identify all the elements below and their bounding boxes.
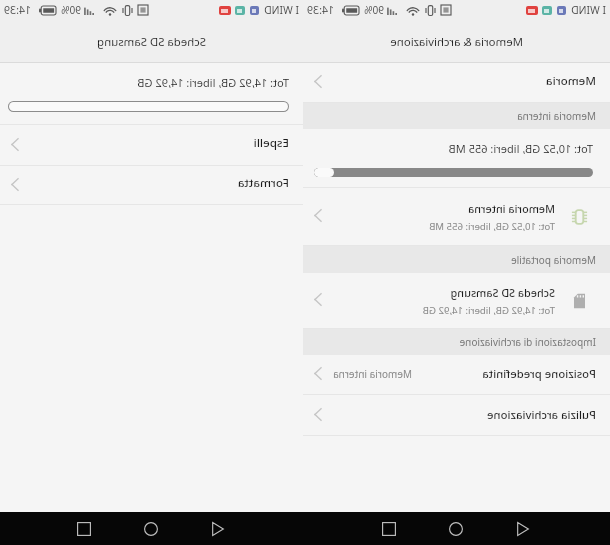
staticText: Memoria interna [468, 201, 555, 216]
staticText: Memoria & archiviazione [390, 34, 523, 50]
button[interactable]: Formatta [0, 166, 303, 204]
staticText: Tot: 10,52 GB, liberi: 655 MB [429, 220, 555, 233]
staticText: Espelli [253, 135, 289, 151]
staticText: Scheda SD Samsung [97, 34, 206, 50]
staticText: Formatta [237, 175, 289, 191]
staticText: Tot: 14,92 GB, liberi: 14,92 GB [422, 304, 555, 317]
staticText: Posizione predefinita [482, 366, 596, 381]
staticText: Memoria interna [333, 367, 412, 381]
button[interactable]: Recents [374, 514, 404, 544]
button[interactable]: Back [203, 514, 233, 544]
button[interactable]: Memoria interna [303, 188, 610, 245]
staticText: Scheda SD Samsung [450, 285, 555, 300]
staticText: Pulizia archiviazione [487, 407, 596, 422]
button[interactable]: Memoria [303, 63, 610, 102]
staticText: 14:39 [3, 3, 31, 17]
button[interactable]: Scheda SD Samsung [303, 273, 610, 328]
button[interactable]: Recents [69, 514, 99, 544]
button[interactable]: Posizione predefinita [303, 355, 610, 394]
staticText: I WIND [264, 3, 299, 17]
staticText: Memoria [545, 73, 596, 89]
staticText: Memoria interna [517, 109, 596, 123]
button[interactable]: Espelli [0, 125, 303, 165]
button[interactable]: Home [136, 514, 166, 544]
staticText: Tot: 14,92 GB, liberi: 14,92 GB [137, 75, 289, 90]
staticText: 90% [364, 3, 384, 17]
staticText: 90% [61, 3, 81, 17]
staticText: Tot: 10,52 GB, liberi: 655 MB [448, 141, 593, 156]
staticText: I WIND [571, 3, 606, 17]
button[interactable]: Home [441, 514, 471, 544]
button[interactable]: Pulizia archiviazione [303, 395, 610, 435]
staticText: 14:39 [306, 3, 334, 17]
staticText: Memoria portatile [511, 253, 596, 267]
button[interactable]: Back [508, 514, 538, 544]
staticText: Impostazioni di archiviazione [459, 335, 596, 349]
